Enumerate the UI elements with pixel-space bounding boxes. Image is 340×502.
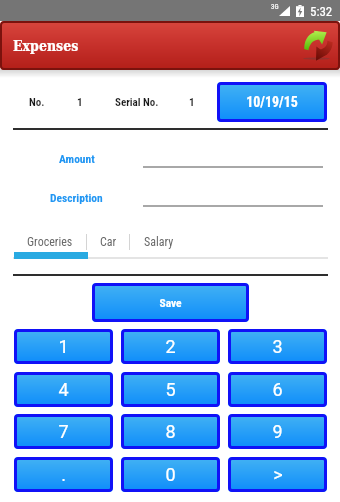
staticText: 10/19/15 [246,94,298,110]
button[interactable]: 4 [14,372,113,407]
button[interactable]: > [228,457,327,492]
button[interactable]: 1 [14,329,113,364]
staticText: 5:32 [310,4,333,19]
staticText: Serial No. [115,96,159,109]
button[interactable]: Salary [130,231,188,253]
staticText: 2 [165,336,176,357]
button[interactable]: Transfer [297,27,335,65]
button[interactable]: Car [87,231,129,253]
staticText: 1 [58,336,69,357]
button[interactable]: Save [92,283,249,322]
staticText: Groceries [27,235,73,249]
staticText: 5 [165,379,176,400]
staticText: Amount [59,152,95,165]
staticText: 7 [58,421,69,442]
button[interactable]: 9 [228,414,327,449]
staticText: 4 [58,379,69,400]
staticText: Description [50,191,103,204]
staticText: No. [29,96,45,109]
button[interactable]: 10/19/15 [217,82,327,122]
button[interactable]: 5 [121,372,220,407]
button[interactable]: Groceries [14,231,86,253]
button[interactable]: . [14,457,113,492]
staticText: > [273,464,283,485]
staticText: 6 [272,379,283,400]
button[interactable]: 6 [228,372,327,407]
staticText: 9 [272,421,283,442]
staticText: 8 [165,421,176,442]
staticText: Salary [144,235,174,249]
staticText: 3 [272,336,283,357]
staticText: Car [100,235,117,249]
staticText: Save [159,296,182,309]
button[interactable]: 2 [121,329,220,364]
button[interactable]: 0 [121,457,220,492]
staticText: 3G [271,3,279,11]
staticText: 1 [189,96,195,109]
button[interactable]: 8 [121,414,220,449]
staticText: 0 [165,464,176,485]
button[interactable]: 7 [14,414,113,449]
staticText: 1 [77,96,83,109]
button[interactable]: 3 [228,329,327,364]
staticText: . [61,464,66,485]
staticText: Expenses [13,38,79,54]
